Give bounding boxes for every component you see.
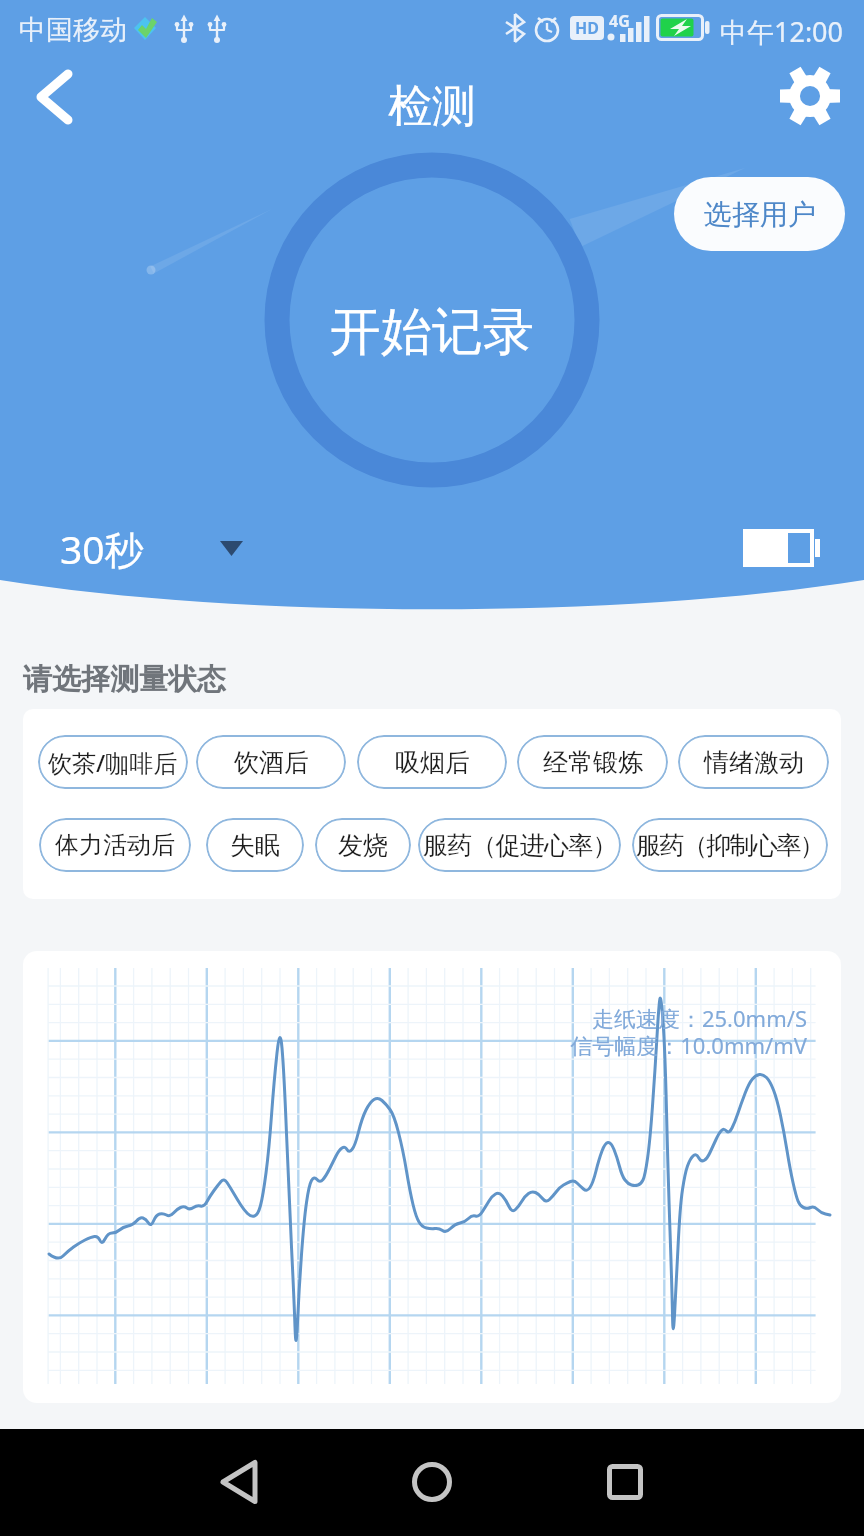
staticText: 吸烟后	[395, 747, 470, 778]
button[interactable]: 30秒	[60, 522, 244, 575]
staticText: 检测	[388, 79, 476, 134]
button[interactable]: Back	[17, 57, 97, 137]
staticText: 中午12:00	[720, 13, 844, 50]
staticText: 4G	[609, 10, 630, 32]
button[interactable]: 发烧	[315, 818, 411, 872]
staticText: 选择用户	[704, 197, 816, 232]
staticText: 经常锻炼	[543, 747, 643, 778]
button[interactable]: 体力活动后	[39, 818, 191, 872]
staticText: 30秒	[60, 522, 144, 575]
staticText: 请选择测量状态	[23, 661, 226, 698]
button[interactable]: 服药（抑制心率）	[632, 818, 828, 872]
staticText: 服药（抑制心率）	[636, 830, 824, 861]
staticText: 体力活动后	[55, 830, 175, 860]
button[interactable]: 服药（促进心率）	[418, 818, 621, 872]
button[interactable]: Back	[175, 1434, 303, 1530]
button[interactable]: Home	[368, 1434, 496, 1530]
staticText: 饮酒后	[234, 747, 309, 778]
staticText: 走纸速度：25.0mm/S 信号幅度：10.0mm/mV	[570, 1003, 807, 1060]
button[interactable]: 情绪激动	[678, 735, 829, 789]
staticText: 失眠	[230, 830, 280, 861]
staticText: HD	[575, 17, 599, 39]
button[interactable]: 选择用户	[674, 177, 845, 251]
staticText: 服药（促进心率）	[423, 830, 617, 861]
button[interactable]: Settings	[770, 56, 850, 136]
button[interactable]: 饮酒后	[196, 735, 346, 789]
staticText: 情绪激动	[704, 747, 804, 778]
button[interactable]: 饮茶/咖啡后	[38, 735, 188, 789]
button[interactable]: Recent apps	[561, 1434, 689, 1530]
button[interactable]: 吸烟后	[357, 735, 507, 789]
staticText: 开始记录	[330, 300, 534, 364]
staticText: 中国移动	[19, 13, 127, 47]
staticText: 饮茶/咖啡后	[48, 746, 178, 779]
button[interactable]: 经常锻炼	[517, 735, 668, 789]
button[interactable]: 失眠	[206, 818, 304, 872]
staticText: 发烧	[338, 830, 388, 861]
